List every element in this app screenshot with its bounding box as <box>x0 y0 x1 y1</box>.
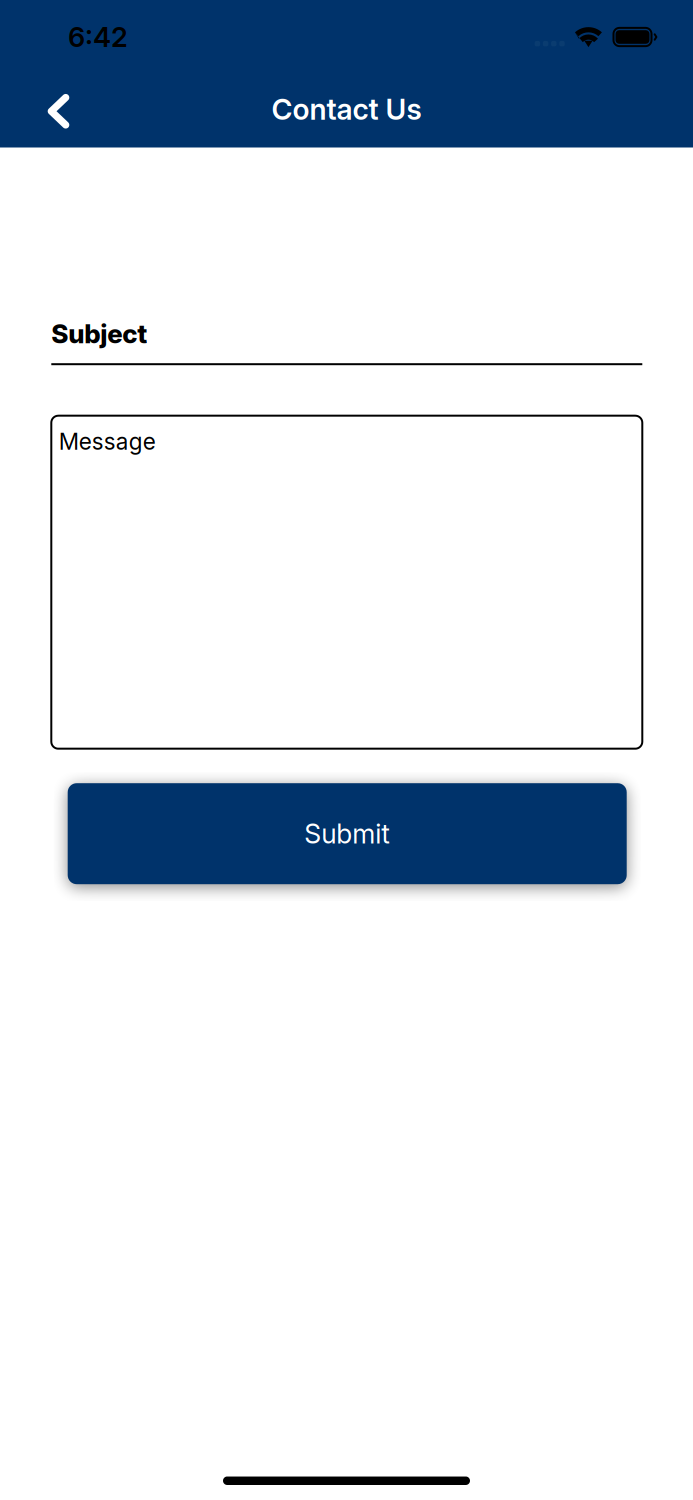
staticText: Submit <box>304 818 390 850</box>
button[interactable]: Subject <box>51 304 642 365</box>
staticText: Message <box>59 428 156 455</box>
button[interactable]: Back <box>29 80 87 138</box>
staticText: 6:42 <box>68 20 128 54</box>
button[interactable]: Message <box>51 416 642 749</box>
button[interactable]: Submit <box>68 783 627 884</box>
staticText: Subject <box>51 318 147 349</box>
staticText: Contact Us <box>271 92 421 127</box>
